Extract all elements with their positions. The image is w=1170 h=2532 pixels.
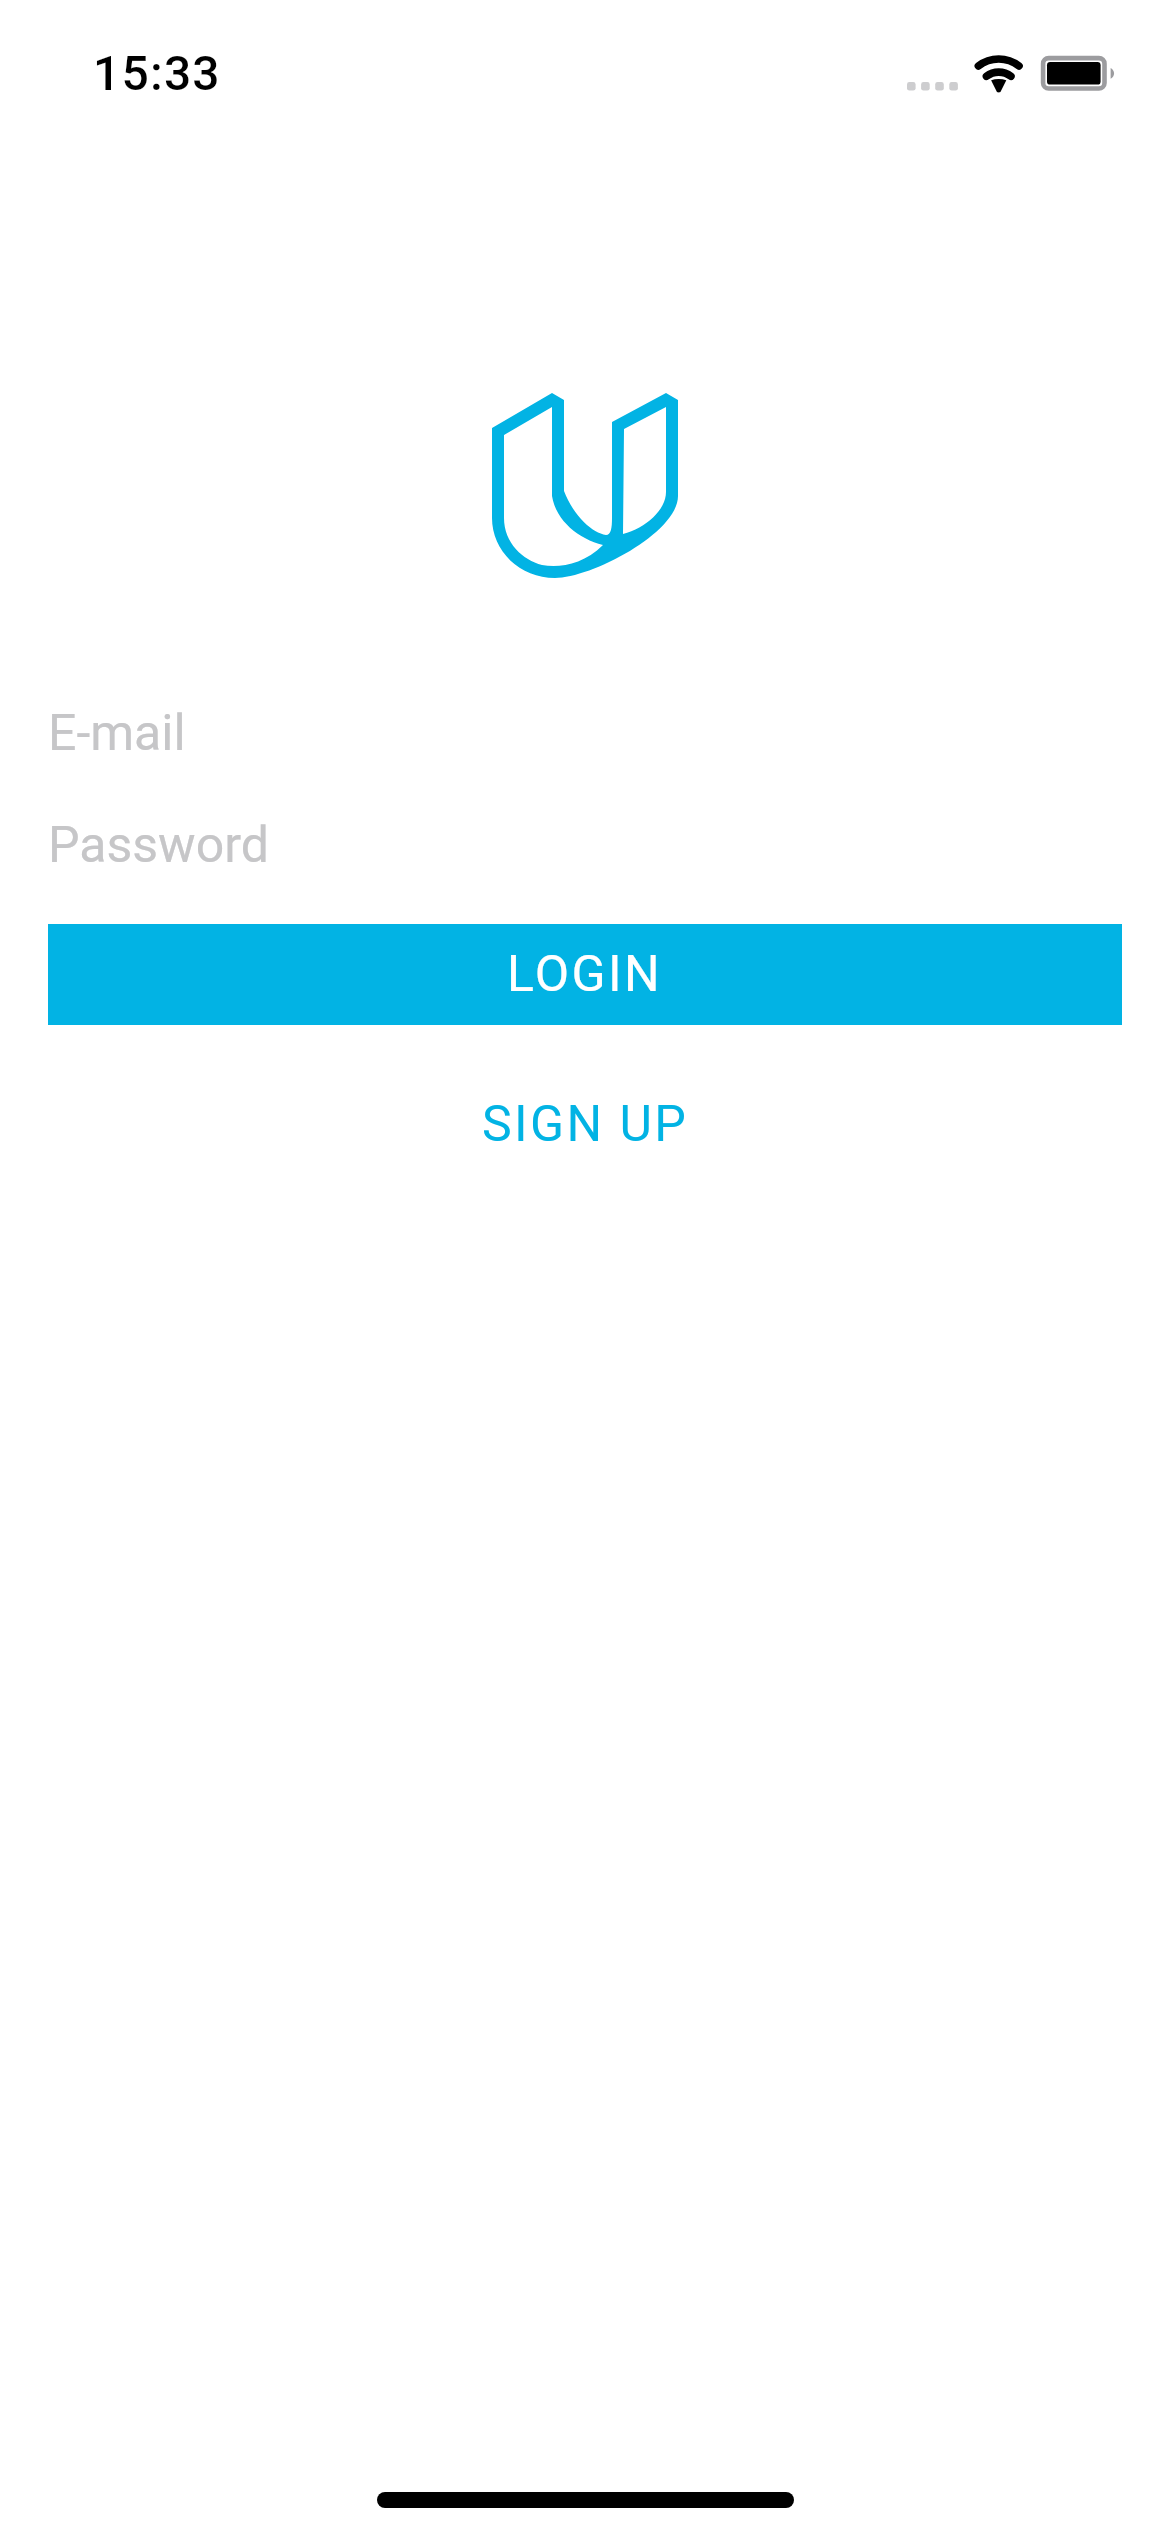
button[interactable]: E-mail	[48, 704, 1170, 772]
other: Udacity	[492, 392, 678, 578]
staticText: SIGN UP	[482, 1095, 689, 1154]
button[interactable]: LOGIN	[48, 924, 1122, 1025]
staticText: 15:33	[93, 45, 221, 101]
button[interactable]: Password	[48, 816, 1170, 884]
staticText: LOGIN	[507, 945, 663, 1004]
button[interactable]: SIGN UP	[48, 1069, 1122, 1179]
